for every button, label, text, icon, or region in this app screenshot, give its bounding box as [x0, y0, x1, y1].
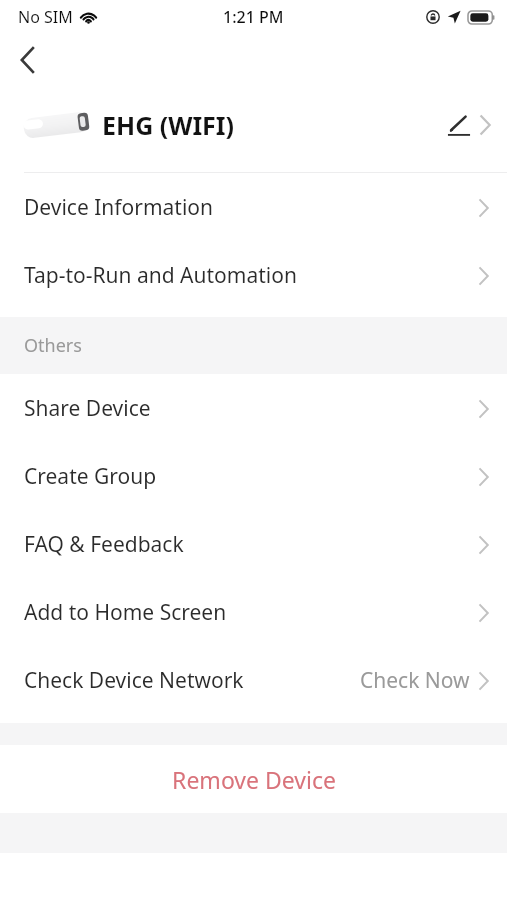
staticText: EHG (WIFI) [102, 108, 235, 142]
staticText: Share Device [24, 394, 151, 423]
staticText: Check Now [360, 666, 470, 695]
staticText: Add to Home Screen [24, 598, 227, 627]
button[interactable]: Tap-to-Run and Automation [0, 241, 507, 309]
staticText: 1:21 PM [223, 6, 284, 28]
button[interactable]: Check Device Network [0, 646, 507, 714]
staticText: Create Group [24, 462, 157, 491]
button[interactable]: Rename device [442, 108, 476, 142]
button[interactable]: EHG (WIFI) [0, 86, 507, 164]
button[interactable]: Share Device [0, 374, 507, 442]
button[interactable]: Remove Device [0, 745, 507, 813]
staticText: Device Information [24, 193, 214, 222]
staticText: FAQ & Feedback [24, 530, 184, 559]
button[interactable]: Add to Home Screen [0, 578, 507, 646]
staticText: Others [24, 333, 82, 358]
button[interactable]: FAQ & Feedback [0, 510, 507, 578]
button[interactable]: Back [6, 39, 48, 81]
staticText: No SIM [18, 6, 73, 28]
button[interactable]: Create Group [0, 442, 507, 510]
staticText: Check Device Network [24, 666, 244, 695]
staticText: Tap-to-Run and Automation [24, 261, 297, 290]
button[interactable]: Device Information [0, 173, 507, 241]
staticText: Remove Device [172, 764, 336, 795]
